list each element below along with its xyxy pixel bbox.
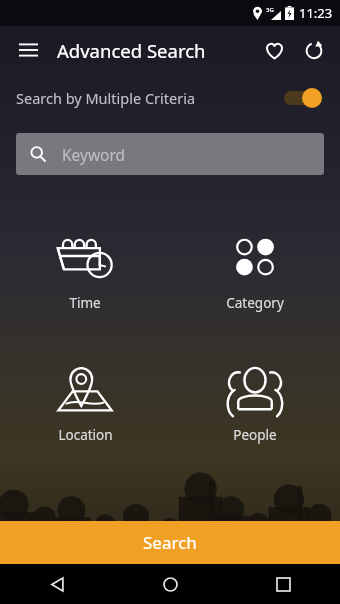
button[interactable]: Menu [12,34,44,66]
staticText: People [233,426,277,444]
button[interactable]: Search [0,521,340,564]
staticText: Keyword [62,144,126,165]
staticText: Location [58,426,113,444]
button[interactable]: Location [0,360,170,444]
button[interactable]: Category [170,228,340,312]
staticText: Advanced Search [57,38,206,63]
staticText: Search by Multiple Criteria [16,88,196,108]
staticText: Search [143,531,197,554]
staticText: 3G [266,6,274,14]
button[interactable]: Back [0,564,114,604]
button[interactable]: Refresh [296,32,332,68]
button[interactable]: People [170,360,340,444]
button[interactable]: Favorite [256,32,292,68]
staticText: 11:23 [299,4,333,22]
button[interactable]: Keyword [16,133,324,175]
button[interactable]: Home [114,564,227,604]
button[interactable]: Time [0,228,170,312]
staticText: Category [226,294,284,312]
staticText: Time [69,294,101,312]
button[interactable]: Recent apps [227,564,340,604]
button[interactable]: Search by Multiple Criteria [0,74,340,122]
